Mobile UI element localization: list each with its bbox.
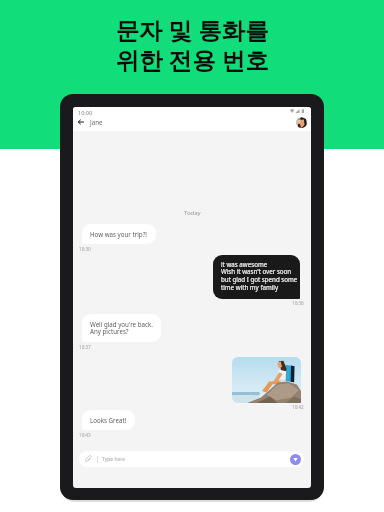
staticText: How was your trip?! [90, 230, 148, 238]
staticText: Today [184, 209, 201, 217]
button[interactable]: Well glad you're back. Any pictures? [82, 314, 161, 342]
button[interactable]: Profile [296, 117, 307, 128]
staticText: 10:42 [292, 404, 304, 410]
staticText: 10:36 [292, 300, 304, 306]
staticText: Type here [102, 456, 126, 463]
staticText: 10:37 [79, 344, 91, 350]
button[interactable]: Photo [232, 357, 301, 403]
staticText: 10:30 [79, 246, 91, 252]
button[interactable]: it was awesome Wish it wasn't over soon … [213, 255, 300, 299]
staticText: 문자 및 통화를 위한 전용 번호 [115, 14, 269, 76]
staticText: 10:00 [78, 109, 93, 116]
staticText: Well glad you're back. Any pictures? [90, 320, 153, 336]
button[interactable]: Attach file [79, 451, 97, 467]
staticText: 10:43 [79, 432, 91, 438]
staticText: it was awesome Wish it wasn't over soon … [221, 260, 298, 292]
button[interactable]: Looks Great! [82, 410, 135, 430]
button[interactable]: How was your trip?! [82, 224, 156, 244]
staticText: Looks Great! [90, 416, 127, 424]
button[interactable]: Send [290, 454, 301, 465]
button[interactable]: Back [75, 116, 86, 127]
button[interactable]: Jane [90, 118, 103, 126]
